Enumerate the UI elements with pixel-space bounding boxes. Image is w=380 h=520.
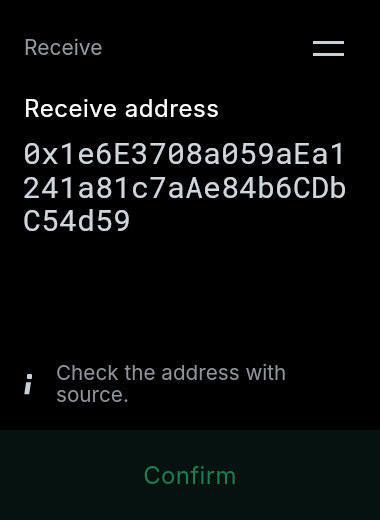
staticText: source. [56, 382, 129, 407]
staticText: Confirm [143, 461, 237, 490]
button[interactable]: Confirm [0, 430, 380, 520]
staticText: Check the address with [56, 360, 287, 385]
staticText: Receive [24, 35, 103, 60]
staticText: 0x1e6E3708a059aEa1241a81c7aAe84b6CDbC54d… [23, 133, 363, 239]
staticText: Receive address [24, 94, 220, 123]
button[interactable]: Menu [306, 26, 350, 70]
